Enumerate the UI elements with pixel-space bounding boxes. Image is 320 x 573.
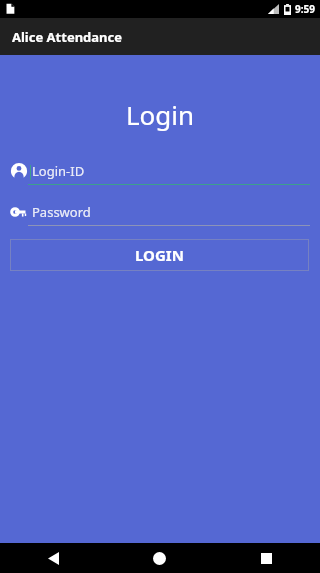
- button[interactable]: Login ID: [0, 162, 320, 185]
- button[interactable]: Password: [0, 203, 320, 226]
- staticText: 9:59: [295, 2, 315, 16]
- button[interactable]: Recent apps: [213, 543, 320, 573]
- button[interactable]: LOGIN: [10, 239, 309, 271]
- button[interactable]: Home: [106, 543, 213, 573]
- other: Password: [10, 203, 28, 221]
- staticText: Login: [0, 97, 320, 132]
- staticText: Login-ID: [32, 162, 85, 180]
- staticText: LOGIN: [135, 245, 184, 265]
- button[interactable]: Back: [0, 543, 106, 573]
- other: Login ID: [10, 162, 28, 180]
- staticText: Password: [32, 203, 91, 221]
- staticText: Alice Attendance: [12, 28, 123, 46]
